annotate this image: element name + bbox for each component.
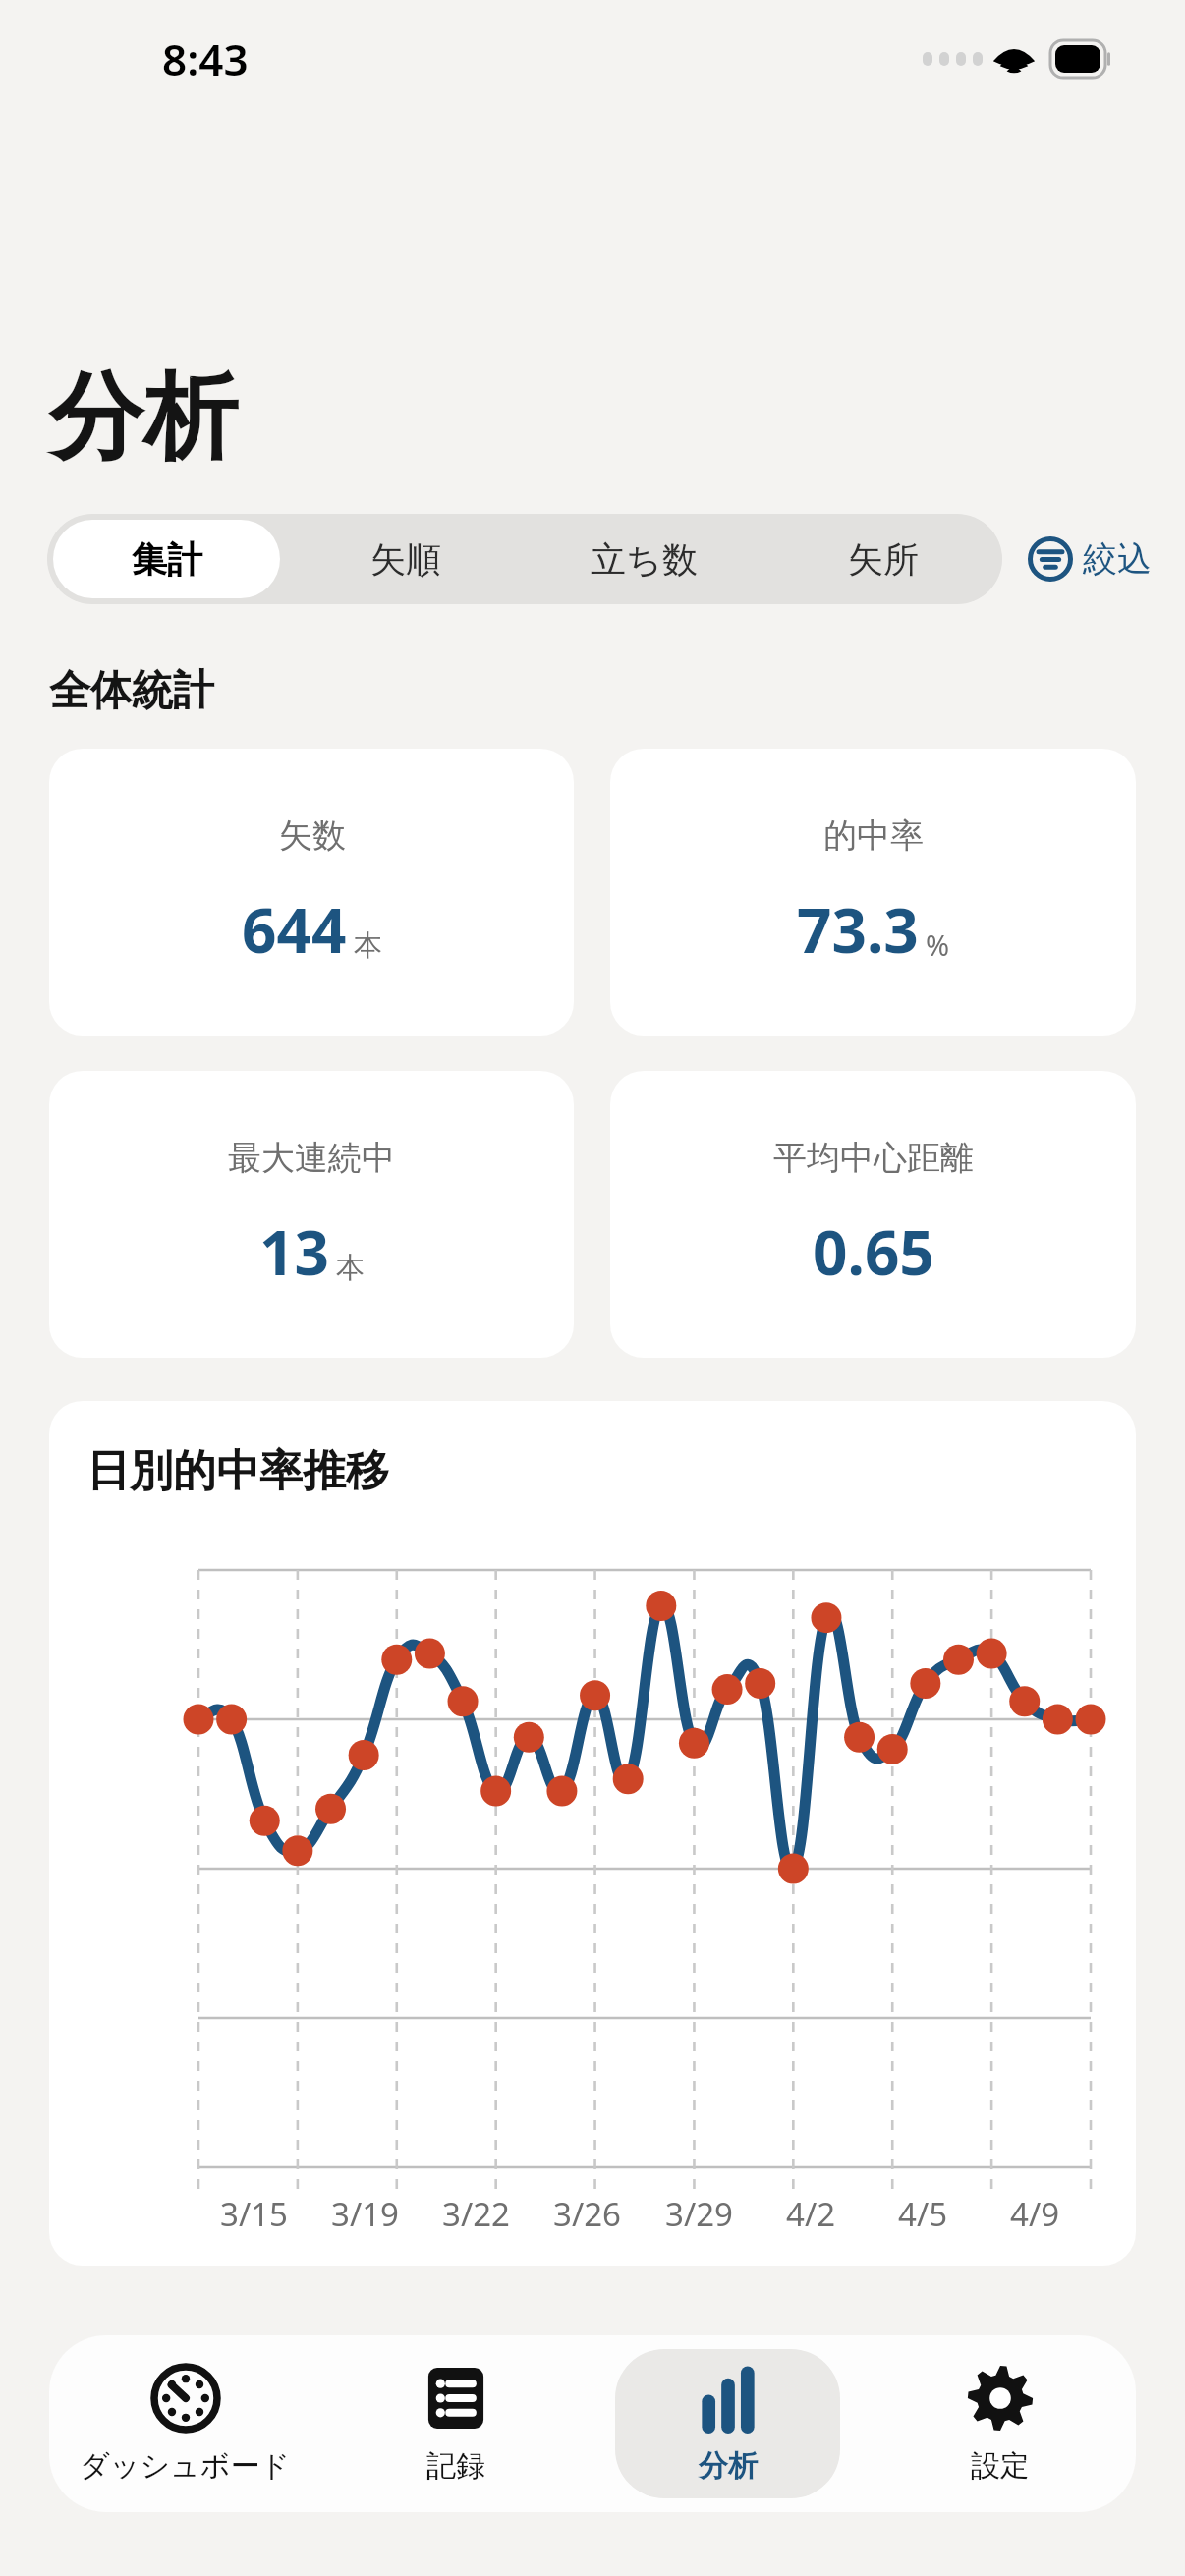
button[interactable]: 矢数 [49, 749, 574, 1036]
staticText: 的中率 [823, 814, 924, 857]
staticText: ダッシュボード [80, 2447, 291, 2485]
button[interactable]: ダッシュボード [73, 2349, 297, 2498]
staticText: 3/29 [665, 2192, 733, 2236]
staticText: 集計 [132, 537, 202, 582]
staticText: 本 [354, 927, 382, 964]
staticText: 4/2 [786, 2192, 836, 2236]
staticText: 0.65 [813, 1210, 934, 1293]
button[interactable]: 的中率 [610, 749, 1136, 1036]
button[interactable]: 絞込 [1024, 532, 1156, 586]
staticText: 矢順 [370, 537, 441, 582]
staticText: 3/15 [220, 2192, 288, 2236]
staticText: 13 [259, 1210, 329, 1293]
staticText: 設定 [971, 2447, 1030, 2485]
staticText: 記録 [426, 2447, 485, 2485]
staticText: 最大連続中 [228, 1137, 395, 1179]
staticText: 分析 [699, 2447, 758, 2485]
staticText: 8:43 [162, 29, 249, 88]
staticText: 矢数 [279, 814, 346, 857]
button[interactable]: 設定 [887, 2349, 1112, 2498]
button[interactable]: 分析 [615, 2349, 840, 2498]
staticText: % [926, 925, 950, 964]
button[interactable]: 立ち数 [531, 520, 758, 598]
staticText: 立ち数 [591, 537, 698, 582]
staticText: 絞込 [1083, 537, 1152, 581]
button[interactable]: 平均中心距離 [610, 1071, 1136, 1358]
staticText: 日別的中率推移 [86, 1444, 389, 1498]
staticText: 4/5 [898, 2192, 948, 2236]
staticText: 3/22 [442, 2192, 510, 2236]
staticText: 3/19 [331, 2192, 399, 2236]
staticText: 644 [242, 888, 347, 971]
staticText: 3/26 [553, 2192, 621, 2236]
staticText: 分析 [49, 359, 238, 477]
staticText: 4/9 [1010, 2192, 1060, 2236]
staticText: 本 [336, 1250, 365, 1286]
button[interactable]: 矢所 [769, 520, 996, 598]
staticText: 矢所 [848, 537, 919, 582]
staticText: 73.3 [797, 888, 919, 971]
staticText: 全体統計 [49, 665, 214, 717]
button[interactable]: 矢順 [292, 520, 519, 598]
button[interactable]: 集計 [53, 520, 280, 598]
button[interactable]: 最大連続中 [49, 1071, 574, 1358]
staticText: 平均中心距離 [773, 1137, 974, 1179]
button[interactable]: 記録 [344, 2349, 568, 2498]
